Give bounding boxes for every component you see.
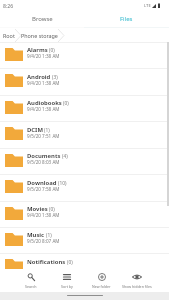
button[interactable]: Search [13,269,49,292]
staticText: Phone storage [21,32,58,39]
staticText: 9/4/20 1:38 AM [27,80,60,86]
staticText: Alarms [27,46,48,54]
staticText: New folder [92,284,111,289]
staticText: 9/5/20 7:51 AM [27,133,60,139]
staticText: Download [27,179,57,187]
button[interactable]: Phone storage [21,32,58,39]
button[interactable]: Sort by [49,269,84,292]
staticText: 9/4/20 1:38 AM [27,53,60,59]
staticText: Browse [32,15,53,23]
staticText: LTE [144,3,151,9]
button[interactable]: Android [0,69,169,96]
button[interactable]: Movies [0,202,169,228]
staticText: 9/5/20 8:07 AM [27,238,60,244]
staticText: (0) [63,100,69,107]
staticText: (1) [46,232,52,239]
button[interactable]: Music [0,228,169,254]
staticText: Audiobooks [27,99,62,107]
staticText: (0) [49,47,55,54]
button[interactable]: Alarms [0,43,169,69]
staticText: Notifications [27,258,66,266]
staticText: Documents [27,152,61,160]
staticText: Root [3,32,15,39]
staticText: 9/4/20 1:38 AM [27,106,60,112]
button[interactable]: Root [0,32,15,39]
staticText: (4) [62,153,68,160]
staticText: (0) [67,259,73,266]
button[interactable]: Browse [0,11,84,27]
button[interactable]: Download [0,175,169,202]
button[interactable]: DCIM [0,122,169,149]
button[interactable]: Files [84,11,169,27]
staticText: 9/4/20 1:38 AM [27,212,60,218]
staticText: (3) [52,74,58,81]
button[interactable]: New folder [84,269,119,292]
staticText: Files [120,15,133,23]
staticText: Movies [27,205,48,213]
staticText: Search [25,284,37,289]
staticText: DCIM [27,126,43,134]
button[interactable]: Audiobooks [0,96,169,122]
staticText: (1) [44,127,50,134]
button[interactable]: Show hidden files [119,269,154,292]
staticText: (0) [49,206,55,213]
staticText: 8:26 [3,2,14,9]
staticText: Sort by [61,284,73,289]
button[interactable]: Documents [0,149,169,175]
button[interactable]: Notifications [0,254,169,281]
staticText: Android [27,73,51,81]
staticText: (10) [58,180,67,187]
staticText: Show hidden files [122,284,152,289]
staticText: 9/5/20 7:58 AM [27,186,60,192]
staticText: Music [27,231,45,239]
staticText: 9/5/20 8:03 AM [27,159,60,165]
